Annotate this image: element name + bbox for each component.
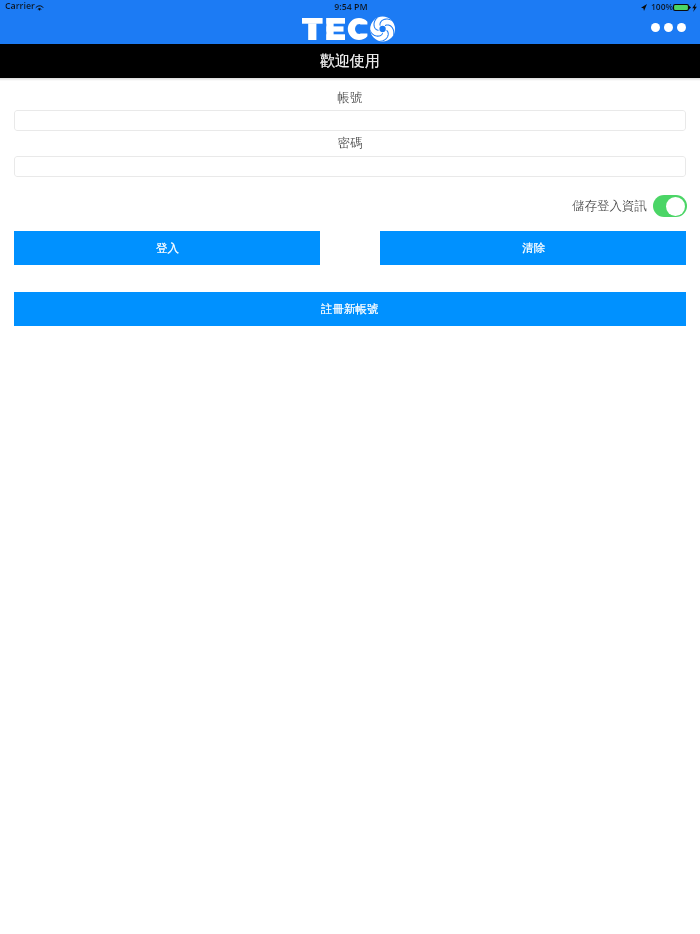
staticText: 清除 [522, 241, 545, 255]
button[interactable]: 登入 [14, 231, 320, 265]
staticText: 9:54 PM [1, 1, 700, 13]
button[interactable]: Save login information [653, 195, 687, 217]
button[interactable]: 註冊新帳號 [14, 292, 686, 326]
staticText: 密碼 [0, 135, 700, 151]
button[interactable]: Text input [14, 110, 686, 131]
staticText: 歡迎使用 [320, 52, 380, 71]
staticText: 註冊新帳號 [321, 302, 379, 316]
button[interactable]: More options [649, 21, 688, 34]
button[interactable]: Text input [14, 156, 686, 177]
button[interactable]: 清除 [380, 231, 686, 265]
staticText: Carrier [5, 0, 35, 12]
staticText: 帳號 [0, 90, 700, 106]
staticText: 登入 [156, 241, 179, 255]
button[interactable]: 儲存登入資訊 [572, 195, 687, 217]
staticText: 100% [651, 1, 674, 13]
staticText: 儲存登入資訊 [572, 198, 647, 214]
